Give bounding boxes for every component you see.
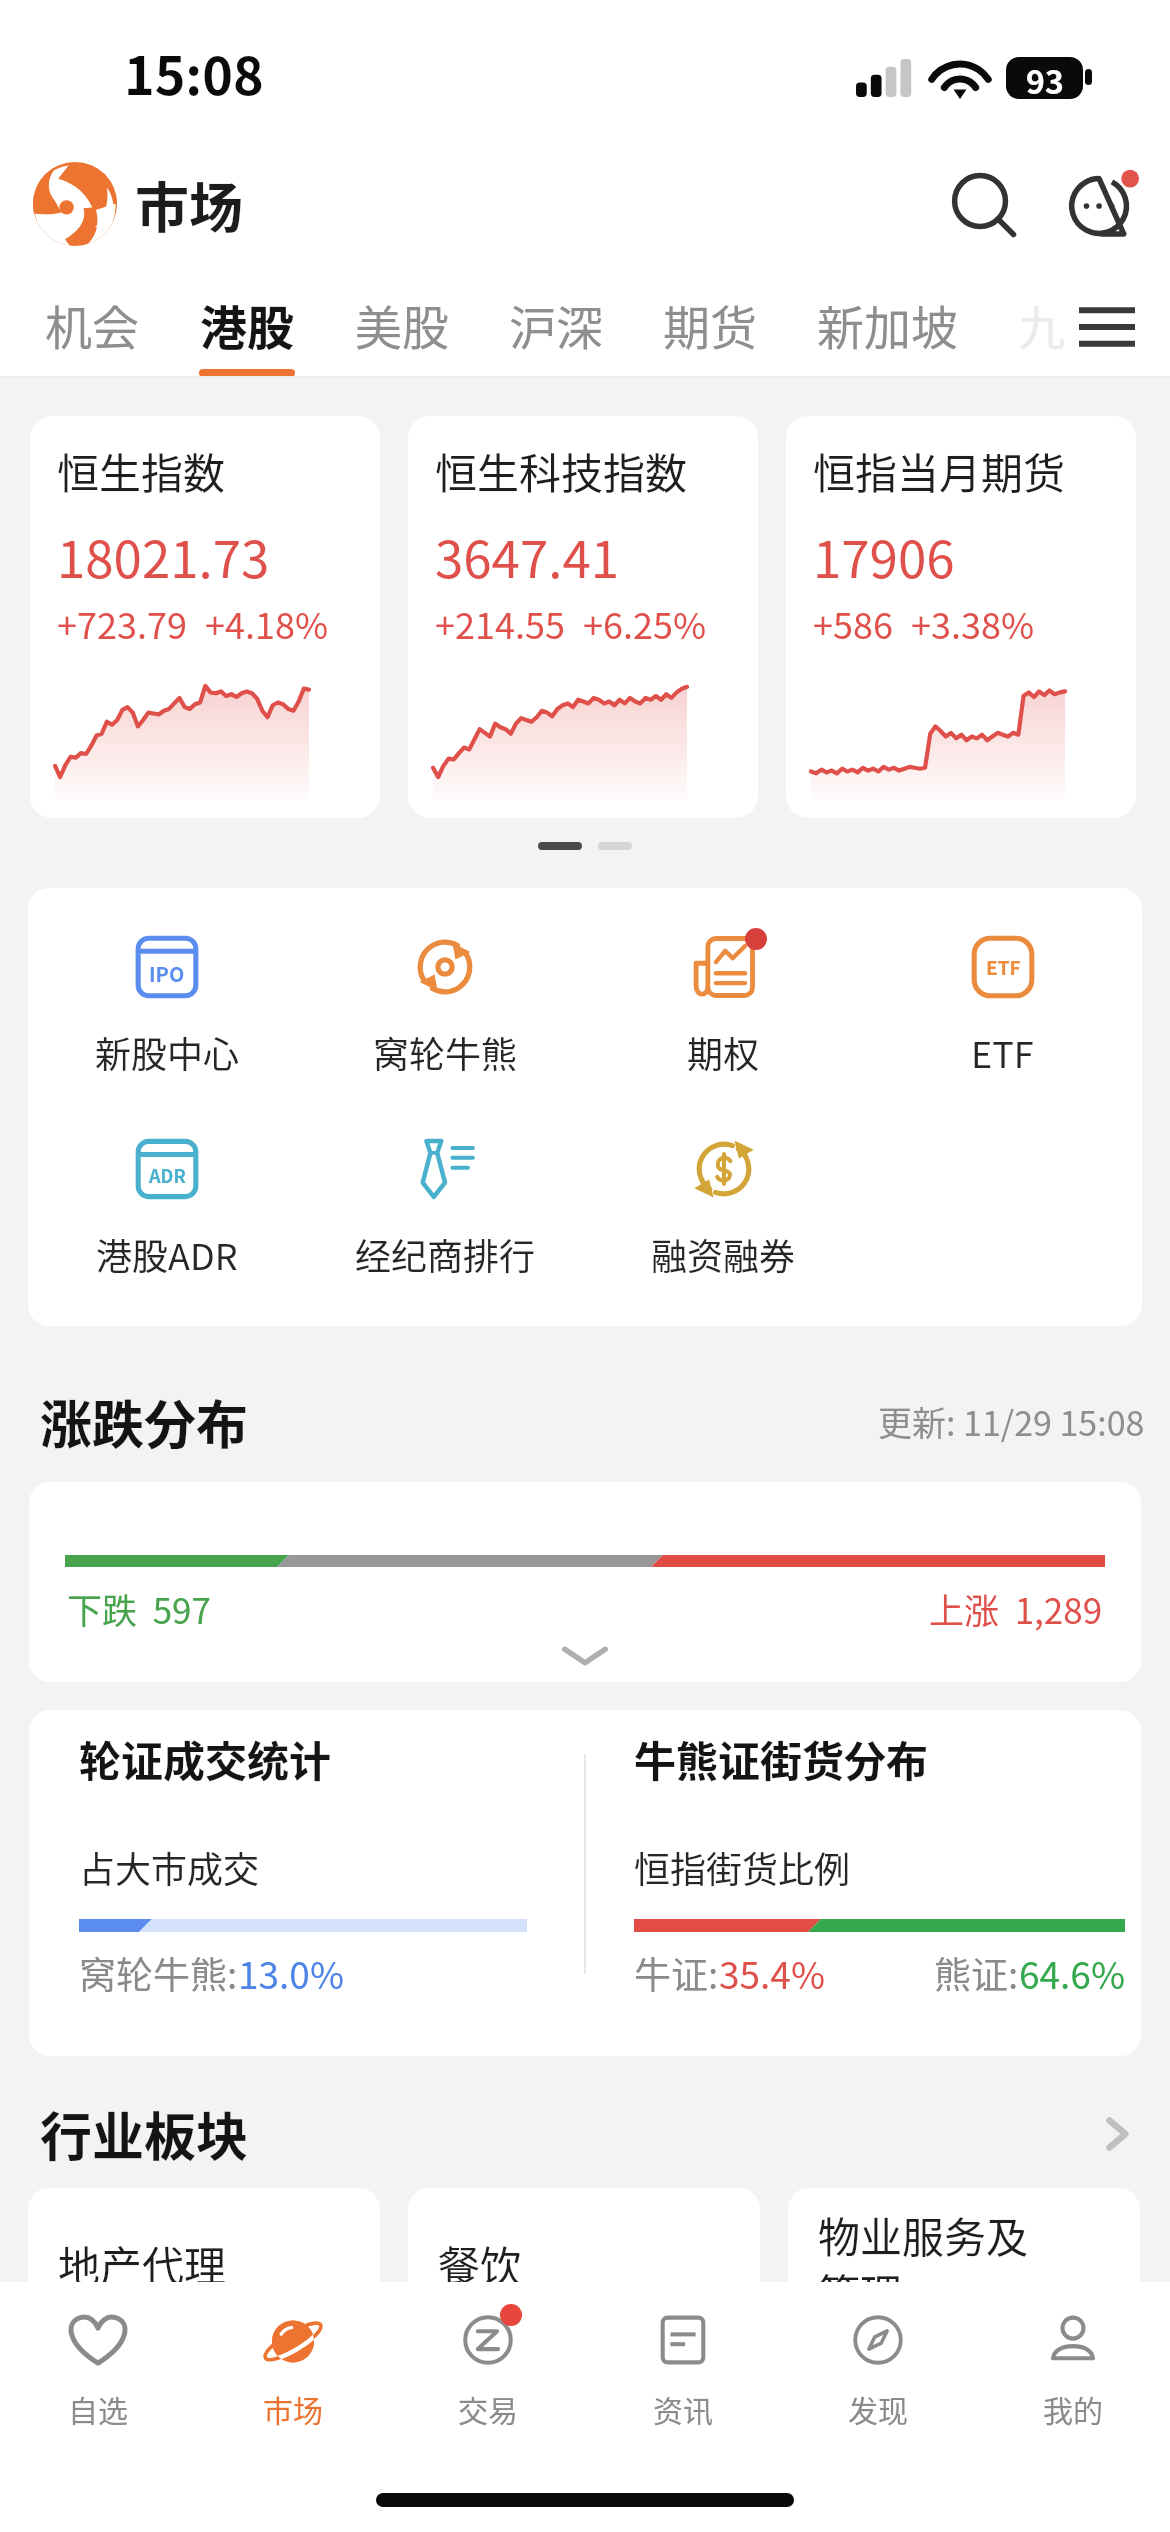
button[interactable]: 恒指当月期货 xyxy=(786,416,1136,818)
staticText: 17906 xyxy=(813,519,955,593)
button[interactable]: Messages xyxy=(1062,163,1148,249)
staticText: 机会 xyxy=(45,290,139,358)
button[interactable]: 窝轮牛熊 xyxy=(306,936,584,1078)
staticText: 经纪商排行 xyxy=(355,1228,536,1280)
button[interactable]: 牛熊证街货分布 xyxy=(634,1728,1125,2000)
button[interactable]: 经纪商排行 xyxy=(306,1138,584,1280)
staticText: 美股 xyxy=(355,290,449,358)
button[interactable]: 行业板块 xyxy=(40,2096,1138,2171)
staticText: 窝轮牛熊: xyxy=(79,1946,238,2000)
staticText: 交易 xyxy=(458,2387,518,2430)
staticText: 上涨 1,289 xyxy=(929,1583,1103,1634)
button[interactable]: 融资融券 xyxy=(584,1138,863,1280)
staticText: 恒指街货比例 xyxy=(634,1841,851,1893)
staticText: 港股 xyxy=(200,290,294,358)
button[interactable]: 地产代理 xyxy=(28,2188,380,2488)
staticText: ETF xyxy=(971,1026,1034,1078)
button[interactable]: 沪深 xyxy=(509,268,603,378)
staticText: 恒指当月期货 xyxy=(813,440,1066,501)
button[interactable]: 我的 xyxy=(975,2282,1170,2430)
button[interactable]: 新加坡 xyxy=(817,268,958,378)
button[interactable]: 机会 xyxy=(45,268,139,378)
staticText: +723.79 xyxy=(57,597,187,649)
staticText: 市场 xyxy=(135,165,243,243)
staticText: +214.55 xyxy=(435,597,565,649)
staticText: 3647.41 xyxy=(435,519,620,593)
staticText: 占大市成交 xyxy=(79,1841,260,1893)
button[interactable]: 轮证成交统计 xyxy=(79,1728,527,2000)
staticText: 沪深 xyxy=(509,290,603,358)
button[interactable]: 恒生指数 xyxy=(30,416,380,818)
button[interactable]: ETF xyxy=(863,936,1142,1078)
staticText: 自选 xyxy=(68,2387,128,2430)
button[interactable]: All markets xyxy=(1060,280,1154,374)
button[interactable]: IPO xyxy=(28,936,306,1078)
staticText: 发现 xyxy=(848,2387,908,2430)
button[interactable]: 恒生科技指数 xyxy=(408,416,758,818)
staticText: +586 xyxy=(813,597,893,649)
button[interactable]: 餐饮 xyxy=(408,2188,760,2488)
staticText: +4.18% xyxy=(205,597,329,649)
staticText: 融资融券 xyxy=(651,1228,796,1280)
staticText: ETF xyxy=(986,953,1021,981)
staticText: +6.25% xyxy=(583,597,707,649)
button[interactable]: 美股 xyxy=(355,268,449,378)
staticText: 窝轮牛熊 xyxy=(373,1026,518,1078)
staticText: 餐饮 xyxy=(438,2233,523,2294)
staticText: 18021.73 xyxy=(57,519,270,593)
staticText: 资讯 xyxy=(653,2387,713,2430)
button[interactable]: 期货 xyxy=(663,268,757,378)
button[interactable]: 交易 xyxy=(390,2282,585,2430)
button[interactable]: 自选 xyxy=(0,2282,195,2430)
button[interactable]: 发现 xyxy=(780,2282,975,2430)
staticText: 新股中心 xyxy=(95,1026,240,1078)
staticText: 港股ADR xyxy=(96,1228,238,1280)
staticText: 期货 xyxy=(663,290,757,358)
staticText: 轮证成交统计 xyxy=(79,1728,332,1789)
staticText: 期权 xyxy=(687,1026,760,1078)
button[interactable]: 资讯 xyxy=(585,2282,780,2430)
staticText: IPO xyxy=(149,959,185,988)
staticText: 涨跌分布 xyxy=(40,1384,249,1459)
button[interactable]: 下跌 597 xyxy=(29,1482,1141,1682)
staticText: 13.0% xyxy=(238,1946,344,2000)
staticText: 物业服务及 管理 xyxy=(818,2204,1029,2322)
staticText: 35.4% xyxy=(719,1946,825,2000)
staticText: 地产代理 xyxy=(58,2233,227,2294)
staticText: 牛熊证街货分布 xyxy=(634,1728,929,1789)
button[interactable]: ADR xyxy=(28,1138,306,1280)
staticText: 64.6% xyxy=(1019,1946,1125,2000)
staticText: 恒生指数 xyxy=(57,440,226,501)
staticText: ADR xyxy=(149,1162,186,1188)
staticText: 15:08 xyxy=(124,35,264,110)
staticText: +3.38% xyxy=(911,597,1035,649)
button[interactable]: 物业服务及 管理 xyxy=(788,2188,1140,2488)
staticText: 熊证: xyxy=(934,1946,1019,2000)
button[interactable]: 期权 xyxy=(584,936,863,1078)
staticText: 我的 xyxy=(1043,2387,1103,2430)
staticText: 下跌 597 xyxy=(67,1583,211,1634)
staticText: 更新: 11/29 15:08 xyxy=(878,1397,1145,1446)
staticText: 市场 xyxy=(263,2387,323,2430)
button[interactable]: 市场 xyxy=(195,2282,390,2430)
staticText: 牛证: xyxy=(634,1946,719,2000)
staticText: 新加坡 xyxy=(817,290,958,358)
staticText: 恒生科技指数 xyxy=(435,440,688,501)
staticText: 行业板块 xyxy=(40,2096,249,2171)
button[interactable]: Search xyxy=(942,163,1028,249)
staticText: 九 xyxy=(1018,290,1065,358)
button[interactable]: 港股 xyxy=(199,268,295,378)
staticText: 93 xyxy=(1026,57,1064,99)
